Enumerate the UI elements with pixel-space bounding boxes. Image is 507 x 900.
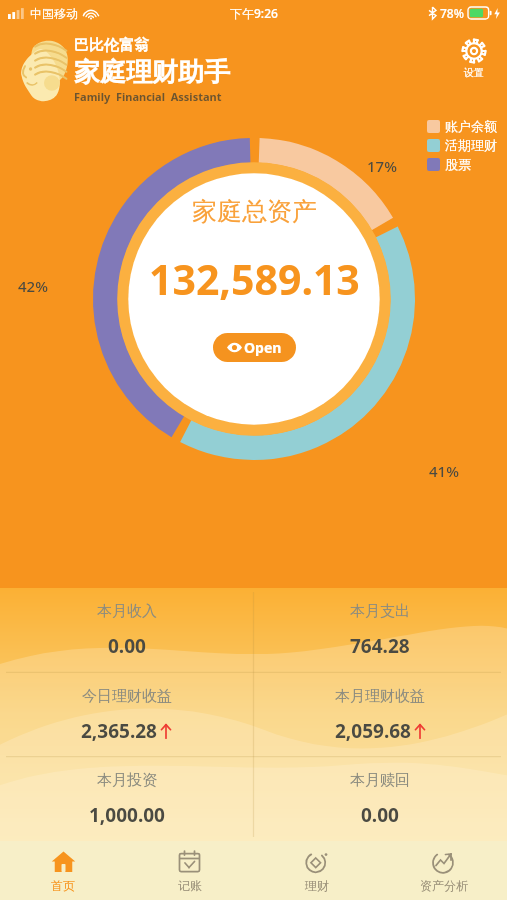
staticText: 记账	[178, 878, 202, 893]
staticText: 理财	[305, 878, 329, 893]
staticText: 股票	[445, 156, 471, 172]
staticText: 0.00	[361, 802, 399, 828]
staticText: 今日理财收益	[82, 687, 172, 706]
button[interactable]: 记账	[126, 841, 253, 900]
button[interactable]: 本月收入	[0, 588, 253, 673]
staticText: 78%	[440, 5, 464, 21]
staticText: Family Financial Assistant	[74, 89, 222, 104]
button[interactable]: 本月赎回	[253, 757, 507, 841]
staticText: 132,589.13	[149, 251, 360, 307]
staticText: 下午9:26	[230, 5, 278, 21]
staticText: 2,059.68	[335, 718, 411, 744]
staticText: 42%	[18, 276, 48, 296]
staticText: 本月支出	[350, 602, 410, 621]
staticText: 17%	[367, 156, 397, 176]
button[interactable]: 资产分析	[380, 841, 507, 900]
staticText: 764.28	[350, 633, 410, 659]
staticText: 2,365.28	[81, 718, 157, 744]
button[interactable]: Open	[213, 333, 296, 362]
staticText: 账户余额	[445, 118, 497, 134]
button[interactable]: 设置	[455, 32, 493, 85]
button[interactable]: 本月支出	[253, 588, 507, 673]
staticText: 本月理财收益	[335, 687, 425, 706]
staticText: 设置	[464, 66, 484, 79]
staticText: 家庭总资产	[192, 196, 317, 227]
staticText: 1,000.00	[89, 802, 165, 828]
staticText: 本月赎回	[350, 771, 410, 790]
staticText: 首页	[51, 878, 75, 893]
button[interactable]: 本月投资	[0, 757, 253, 841]
staticText: 本月收入	[97, 602, 157, 621]
button[interactable]: 本月理财收益	[253, 673, 507, 757]
staticText: 资产分析	[420, 878, 468, 893]
staticText: 本月投资	[97, 771, 157, 790]
staticText: 中国移动	[30, 6, 78, 21]
staticText: Open	[244, 338, 282, 357]
button[interactable]: 首页	[0, 841, 126, 900]
staticText: 41%	[429, 461, 459, 481]
staticText: 活期理财	[445, 137, 497, 153]
staticText: 0.00	[108, 633, 146, 659]
button[interactable]: 理财	[253, 841, 380, 900]
staticText: 家庭理财助手	[74, 56, 230, 89]
staticText: 巴比伦富翁	[74, 36, 149, 55]
button[interactable]: 今日理财收益	[0, 673, 253, 757]
